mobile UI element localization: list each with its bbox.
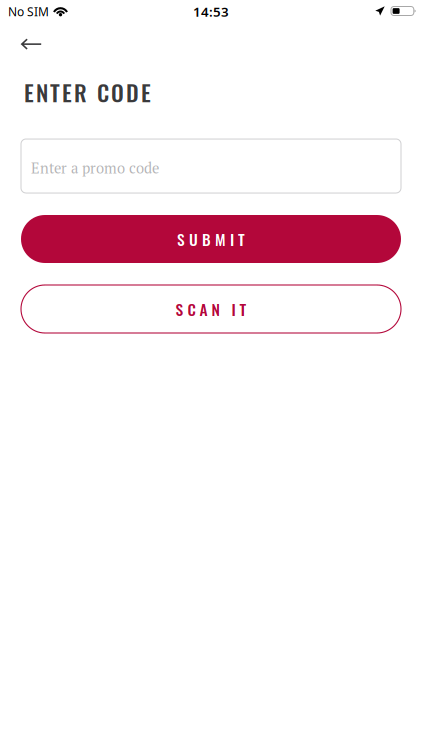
button[interactable]: Enter a promo code — [21, 139, 401, 193]
button[interactable]: SCAN IT — [21, 285, 401, 333]
staticText: Enter a promo code — [31, 158, 159, 178]
button[interactable]: Back — [10, 24, 53, 63]
button[interactable]: SUBMIT — [21, 215, 401, 263]
staticText: 14:53 — [193, 3, 229, 20]
staticText: SUBMIT — [177, 227, 245, 250]
staticText: SCAN IT — [175, 297, 246, 320]
staticText: No SIM — [8, 3, 49, 19]
staticText: ENTER CODE — [24, 75, 151, 109]
